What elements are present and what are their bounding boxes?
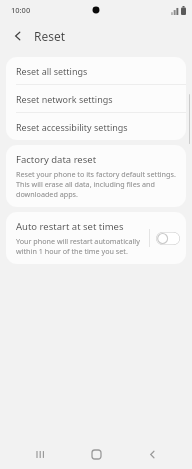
staticText: Reset your phone to its factory default … <box>16 169 176 199</box>
button[interactable]: Reset all settings <box>6 57 186 84</box>
staticText: Auto restart at set times <box>16 220 124 233</box>
button[interactable]: Back <box>137 439 167 469</box>
staticText: Reset network settings <box>16 93 113 105</box>
staticText: Factory data reset <box>16 153 97 166</box>
button[interactable]: Reset network settings <box>6 85 186 112</box>
button[interactable]: Auto restart at set times <box>6 212 186 264</box>
button[interactable]: Reset accessibility settings <box>6 113 186 140</box>
button[interactable]: Recent apps <box>26 439 56 469</box>
button[interactable]: Back <box>8 26 28 46</box>
staticText: 10:00 <box>11 5 31 15</box>
button[interactable]: Factory data reset <box>6 145 186 207</box>
staticText: Reset <box>34 28 66 44</box>
button[interactable]: Auto restart at set times toggle <box>156 232 180 245</box>
button[interactable]: Home <box>81 439 111 469</box>
staticText: Your phone will restart automatically wi… <box>16 236 149 256</box>
staticText: Reset accessibility settings <box>16 121 128 133</box>
staticText: Reset all settings <box>16 65 88 77</box>
